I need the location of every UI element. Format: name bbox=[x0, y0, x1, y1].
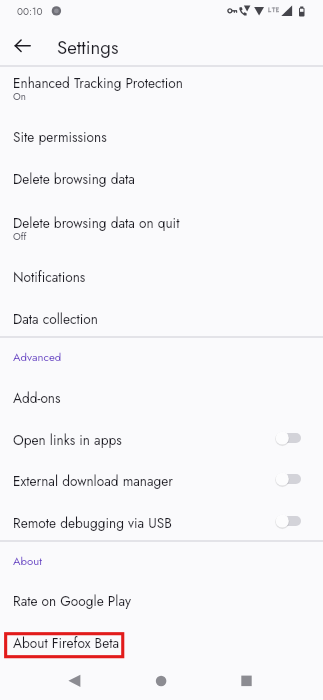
button[interactable]: Add-ons bbox=[0, 377, 323, 419]
staticText: Settings bbox=[57, 34, 119, 61]
staticText: Off bbox=[13, 230, 27, 244]
staticText: Delete browsing data bbox=[13, 169, 135, 189]
staticText: Notifications bbox=[13, 267, 86, 287]
button[interactable]: Data collection bbox=[0, 298, 323, 340]
staticText: Add-ons bbox=[13, 388, 61, 408]
staticText: Remote debugging via USB bbox=[13, 513, 172, 533]
button[interactable]: Home bbox=[149, 668, 173, 692]
button[interactable]: Remote debugging via USB bbox=[0, 502, 323, 544]
staticText: About bbox=[13, 553, 42, 569]
staticText: Delete browsing data on quit bbox=[13, 213, 180, 233]
staticText: External download manager bbox=[13, 471, 174, 491]
button[interactable]: Delete browsing data bbox=[0, 158, 323, 200]
button[interactable]: Back bbox=[62, 668, 86, 692]
staticText: Rate on Google Play bbox=[13, 591, 131, 611]
button[interactable]: Open links in apps bbox=[0, 419, 323, 461]
button[interactable]: Enhanced Tracking Protection bbox=[0, 62, 323, 118]
staticText: On bbox=[13, 90, 26, 104]
button[interactable]: Recent apps bbox=[234, 668, 258, 692]
staticText: Advanced bbox=[13, 349, 62, 365]
button[interactable]: Site permissions bbox=[0, 116, 323, 158]
staticText: Site permissions bbox=[13, 127, 107, 147]
staticText: Open links in apps bbox=[13, 430, 122, 450]
button[interactable]: About Firefox Beta bbox=[0, 622, 323, 664]
staticText: Enhanced Tracking Protection bbox=[13, 73, 183, 93]
button[interactable]: Back bbox=[3, 25, 43, 65]
button[interactable]: Notifications bbox=[0, 256, 323, 298]
button[interactable]: Rate on Google Play bbox=[0, 580, 323, 622]
button[interactable]: Delete browsing data on quit bbox=[0, 202, 323, 258]
button[interactable]: External download manager bbox=[0, 460, 323, 502]
staticText: 00:10 bbox=[17, 4, 43, 18]
staticText: About Firefox Beta bbox=[13, 633, 120, 653]
staticText: Data collection bbox=[13, 309, 98, 329]
